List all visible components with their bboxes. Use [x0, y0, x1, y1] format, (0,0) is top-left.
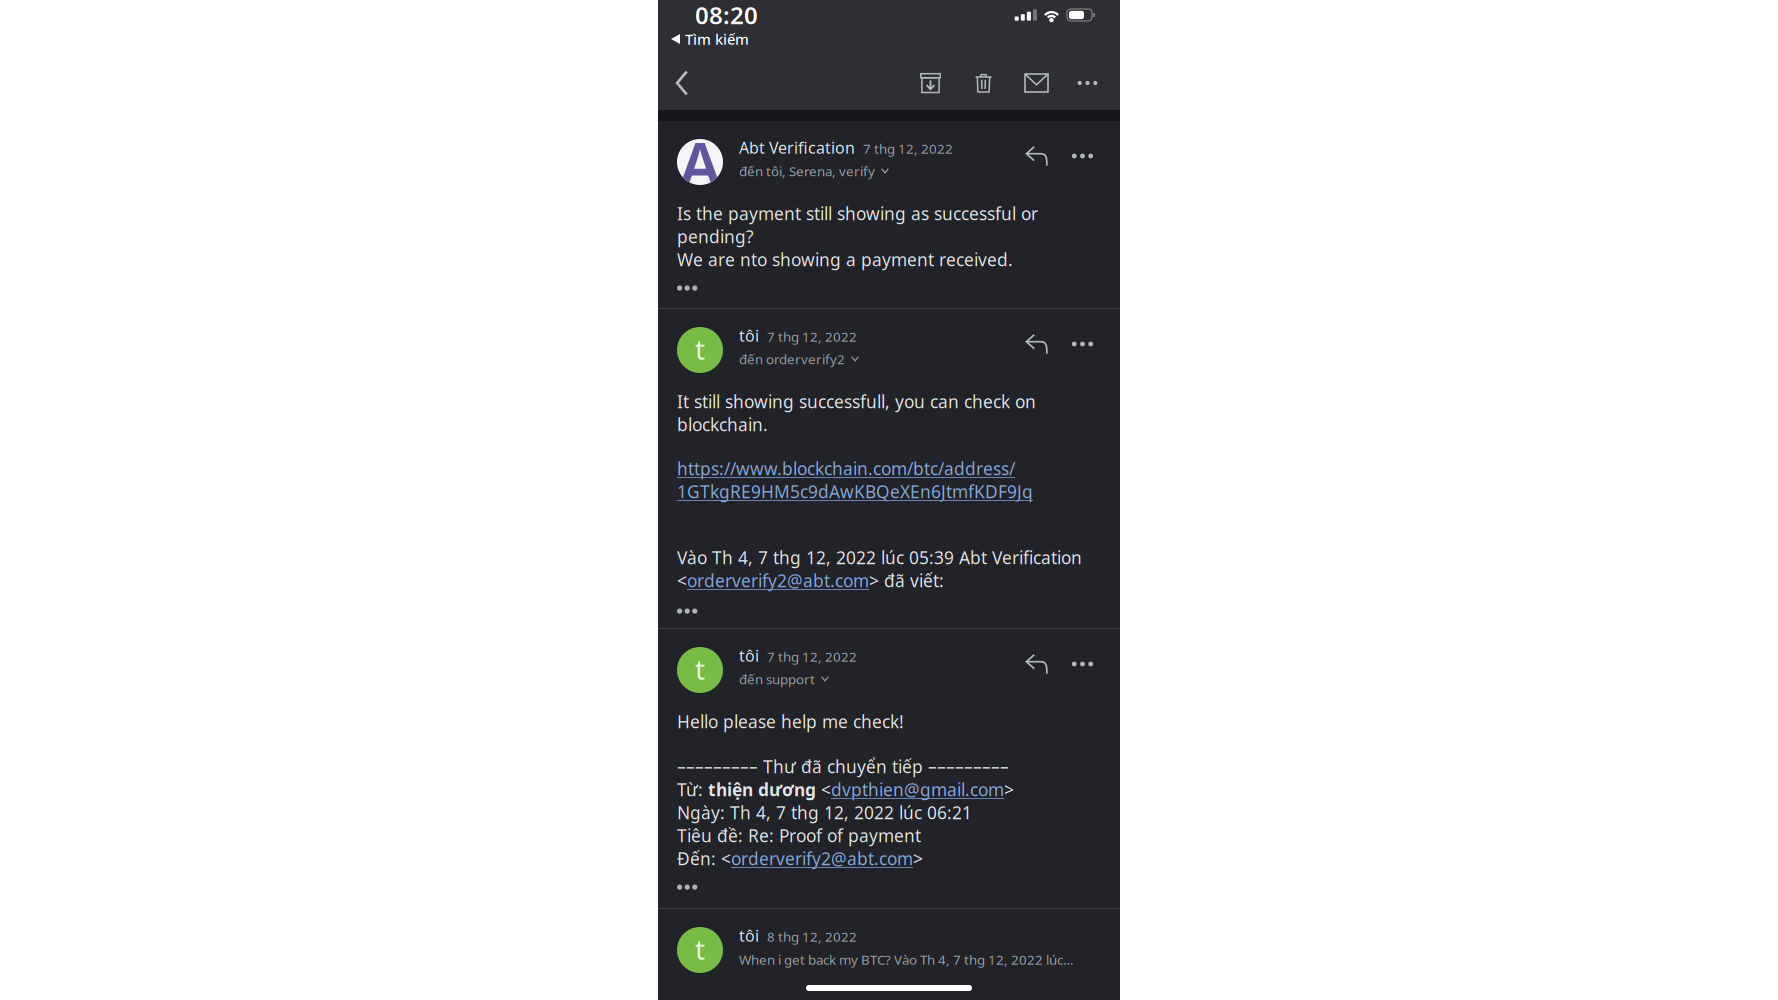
staticText: t — [695, 930, 705, 968]
button[interactable]: Show trimmed content — [677, 604, 711, 618]
button[interactable]: t — [658, 909, 1120, 973]
staticText: tôi — [739, 325, 759, 346]
button[interactable]: Show trimmed content — [677, 281, 711, 295]
button[interactable]: Show trimmed content — [677, 880, 711, 894]
staticText: Tiêu đề: Re: Proof of payment — [677, 824, 921, 847]
button[interactable]: Back to Tìm kiếm — [658, 30, 755, 48]
staticText: đến tôi, Serena, verify — [739, 162, 875, 180]
staticText: Vào Th 4, 7 thg 12, 2022 lúc 05:39 Abt V… — [677, 546, 1082, 569]
staticText: Is the payment still showing as successf… — [677, 202, 1038, 248]
button[interactable]: Reply — [1009, 139, 1064, 171]
staticText: https://www.blockchain.com/btc/address/ — [677, 457, 1015, 480]
button[interactable]: More options — [1064, 647, 1101, 679]
staticText: 7 thg 12, 2022 — [767, 648, 857, 665]
staticText: > — [913, 847, 923, 870]
staticText: ––––––––– Thư đã chuyển tiếp ––––––––– — [677, 755, 1009, 778]
staticText: orderverify2@abt.com — [687, 569, 869, 592]
staticText: đến support — [739, 670, 815, 688]
staticText: Hello please help me check! — [677, 710, 904, 733]
button[interactable]: Mark as unread — [1010, 60, 1063, 106]
staticText: Abt Verification — [739, 137, 855, 158]
staticText: thiện dương — [708, 778, 816, 801]
staticText: > đã viết: — [869, 569, 944, 592]
staticText: 7 thg 12, 2022 — [863, 140, 953, 157]
staticText: Ngày: Th 4, 7 thg 12, 2022 lúc 06:21 — [677, 801, 972, 824]
staticText: < — [816, 778, 831, 801]
staticText: 1GTkgRE9HM5c9dAwKBQeXEn6JtmfKDF9Jq — [677, 480, 1033, 503]
staticText: Từ: — [677, 778, 708, 801]
staticText: Tìm kiếm — [685, 29, 749, 49]
button[interactable]: Reply — [1009, 647, 1064, 679]
staticText: < — [677, 569, 687, 592]
button[interactable]: Back — [662, 60, 702, 106]
staticText: t — [695, 330, 705, 368]
button[interactable]: Reply — [1009, 327, 1064, 359]
staticText: When i get back my BTC? Vào Th 4, 7 thg … — [739, 951, 1074, 968]
staticText: orderverify2@abt.com — [731, 847, 913, 870]
staticText: Đến: < — [677, 847, 731, 870]
button[interactable]: More options — [1064, 327, 1101, 359]
staticText: We are nto showing a payment received. — [677, 248, 1013, 271]
staticText: tôi — [739, 645, 759, 666]
staticText: > — [1004, 778, 1014, 801]
staticText: 7 thg 12, 2022 — [767, 328, 857, 345]
staticText: 8 thg 12, 2022 — [767, 928, 857, 945]
button[interactable]: More options — [1064, 139, 1101, 171]
button[interactable]: https://www.blockchain.com/btc/address/ — [677, 457, 1101, 503]
staticText: t — [695, 650, 705, 688]
staticText: 08:20 — [695, 0, 758, 31]
button[interactable]: Archive — [904, 60, 957, 106]
staticText: dvpthien@gmail.com — [831, 778, 1004, 801]
staticText: tôi — [739, 925, 759, 946]
staticText: đến orderverify2 — [739, 350, 845, 368]
staticText: A — [679, 122, 720, 204]
staticText: It still showing successfull, you can ch… — [677, 390, 1036, 436]
button[interactable]: More — [1063, 60, 1112, 106]
button[interactable]: Delete — [957, 60, 1010, 106]
